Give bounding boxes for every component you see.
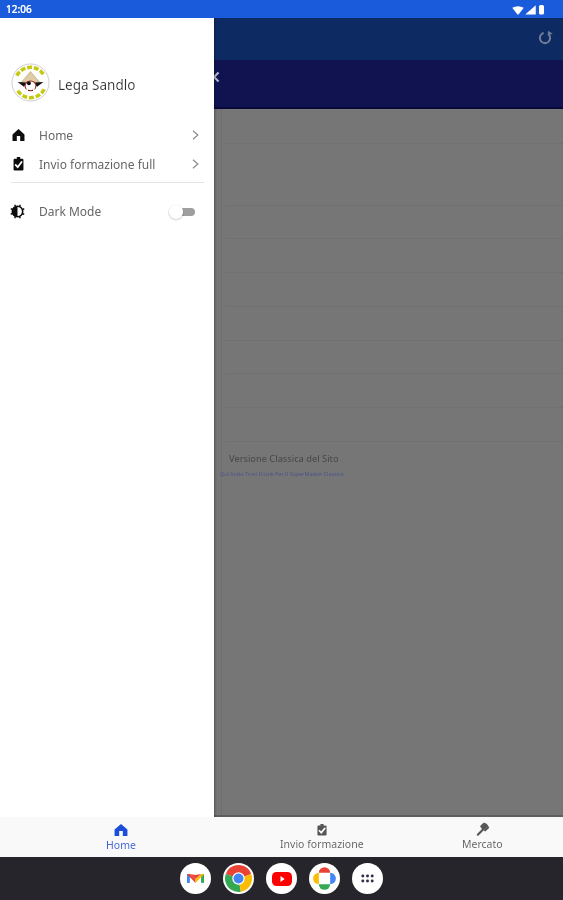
staticText: Mercato: [462, 837, 503, 851]
button[interactable]: Close drawer: [208, 71, 220, 83]
staticText: Dark Mode: [39, 203, 102, 219]
staticText: Home: [106, 838, 136, 852]
button[interactable]: Gmail: [180, 863, 211, 894]
button[interactable]: Home: [66, 817, 176, 857]
button[interactable]: Home: [0, 121, 214, 149]
button[interactable]: Invio formazione: [267, 817, 377, 857]
staticText: Versione Classica del Sito: [229, 452, 339, 465]
button[interactable]: Chrome: [223, 863, 254, 894]
button[interactable]: Mercato: [427, 817, 537, 857]
button[interactable]: YouTube: [266, 863, 297, 894]
staticText: Invio formazione full: [39, 156, 156, 172]
staticText: Lega Sandlo: [58, 76, 136, 94]
button[interactable]: All apps: [352, 863, 383, 894]
button[interactable]: Invio formazione full: [0, 150, 214, 178]
staticText: Home: [39, 127, 74, 143]
button[interactable]: Photos: [309, 863, 340, 894]
staticText: 12:06: [6, 2, 32, 16]
button[interactable]: Dark Mode: [0, 197, 214, 225]
button[interactable]: Dark Mode toggle: [169, 203, 195, 220]
button[interactable]: Qui Sotto Trovi Il Link Per Il SuperMast…: [220, 470, 344, 477]
staticText: Invio formazione: [280, 837, 364, 851]
button[interactable]: Refresh: [532, 25, 558, 51]
